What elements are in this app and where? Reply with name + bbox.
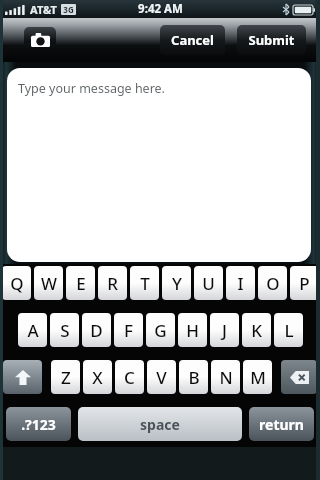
staticText: H — [186, 319, 199, 342]
button[interactable]: G — [146, 313, 175, 347]
button[interactable]: J — [210, 313, 239, 347]
staticText: space — [140, 415, 180, 434]
button[interactable]: O — [258, 266, 287, 300]
staticText: Type your message here. — [18, 80, 165, 97]
button[interactable]: V — [147, 360, 176, 394]
button[interactable]: S — [50, 313, 79, 347]
button[interactable]: W — [34, 266, 63, 300]
staticText: F — [124, 319, 133, 342]
button[interactable]: Cancel — [171, 31, 214, 49]
staticText: A — [27, 319, 39, 342]
button[interactable]: T — [130, 266, 159, 300]
button[interactable]: K — [242, 313, 271, 347]
staticText: T — [140, 272, 150, 295]
staticText: B — [188, 366, 200, 389]
button[interactable]: D — [82, 313, 111, 347]
button[interactable]: Submit — [248, 31, 295, 49]
button[interactable]: Shift — [3, 360, 42, 394]
staticText: .?123 — [21, 415, 56, 434]
button[interactable]: return — [249, 407, 314, 441]
staticText: E — [76, 272, 86, 295]
button[interactable]: Z — [51, 360, 80, 394]
staticText: L — [284, 319, 294, 342]
staticText: Q — [10, 272, 24, 295]
button[interactable]: B — [179, 360, 208, 394]
staticText: U — [202, 272, 215, 295]
staticText: J — [222, 319, 227, 342]
button[interactable]: H — [178, 313, 207, 347]
staticText: W — [41, 272, 57, 295]
staticText: AT&T — [30, 2, 57, 17]
staticText: Submit — [248, 31, 295, 49]
staticText: V — [156, 366, 167, 389]
staticText: I — [237, 272, 244, 295]
staticText: K — [251, 319, 262, 342]
button[interactable]: Q — [2, 266, 31, 300]
staticText: O — [266, 272, 280, 295]
button[interactable]: Type your message here. — [7, 68, 311, 262]
button[interactable]: X — [83, 360, 112, 394]
button[interactable]: N — [211, 360, 240, 394]
staticText: Z — [61, 366, 71, 389]
staticText: R — [107, 272, 118, 295]
staticText: 9:42 AM — [138, 1, 183, 17]
staticText: D — [90, 319, 103, 342]
staticText: G — [154, 319, 167, 342]
button[interactable]: C — [115, 360, 144, 394]
button[interactable]: E — [66, 266, 95, 300]
button[interactable]: F — [114, 313, 143, 347]
staticText: N — [219, 366, 233, 389]
button[interactable]: Camera — [24, 27, 56, 53]
button[interactable]: P — [290, 266, 319, 300]
staticText: 3G — [63, 4, 74, 15]
staticText: M — [250, 366, 266, 389]
staticText: P — [299, 272, 310, 295]
button[interactable]: M — [243, 360, 272, 394]
button[interactable]: .?123 — [6, 407, 71, 441]
staticText: X — [92, 366, 103, 389]
staticText: Y — [172, 272, 182, 295]
staticText: Cancel — [171, 31, 214, 49]
button[interactable]: Y — [162, 266, 191, 300]
button[interactable]: I — [226, 266, 255, 300]
button[interactable]: U — [194, 266, 223, 300]
staticText: return — [259, 415, 304, 434]
button[interactable]: Backspace — [281, 360, 317, 394]
button[interactable]: A — [18, 313, 47, 347]
button[interactable]: R — [98, 266, 127, 300]
button[interactable]: space — [78, 407, 242, 441]
button[interactable]: L — [274, 313, 303, 347]
staticText: S — [60, 319, 70, 342]
staticText: C — [124, 366, 135, 389]
